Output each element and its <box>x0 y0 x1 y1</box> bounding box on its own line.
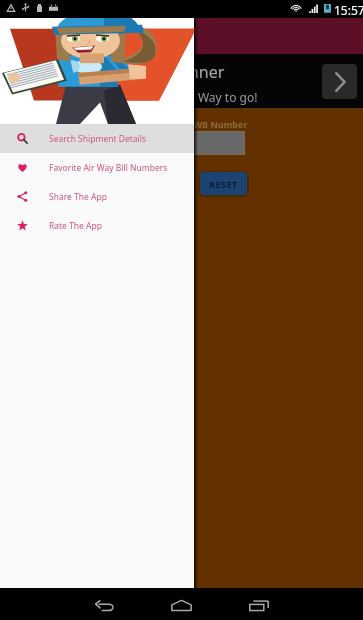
staticText: Share The App <box>49 191 107 203</box>
staticText: 15:57 <box>334 2 363 18</box>
button[interactable]: Rate The App <box>0 211 194 240</box>
staticText: Rate The App <box>49 220 102 232</box>
button[interactable]: Favorite Air Way Bill Numbers <box>0 153 194 182</box>
staticText: Enter AWB Number <box>161 118 248 130</box>
staticText: Search Shipment Details <box>49 133 147 145</box>
button[interactable]: Recent apps <box>241 591 277 620</box>
button[interactable]: Home <box>163 591 199 620</box>
staticText: RESET <box>209 178 238 190</box>
staticText: You won the trip. Way to go! <box>99 89 258 105</box>
button[interactable]: Search Shipment Details <box>0 124 194 153</box>
button[interactable]: Next <box>322 64 357 99</box>
button[interactable] <box>161 132 244 154</box>
staticText: Favorite Air Way Bill Numbers <box>49 162 168 174</box>
button[interactable]: RESET <box>200 172 247 195</box>
staticText: Congratulations Winner <box>45 61 225 83</box>
button[interactable]: Back <box>86 591 122 620</box>
button[interactable]: Share The App <box>0 182 194 211</box>
